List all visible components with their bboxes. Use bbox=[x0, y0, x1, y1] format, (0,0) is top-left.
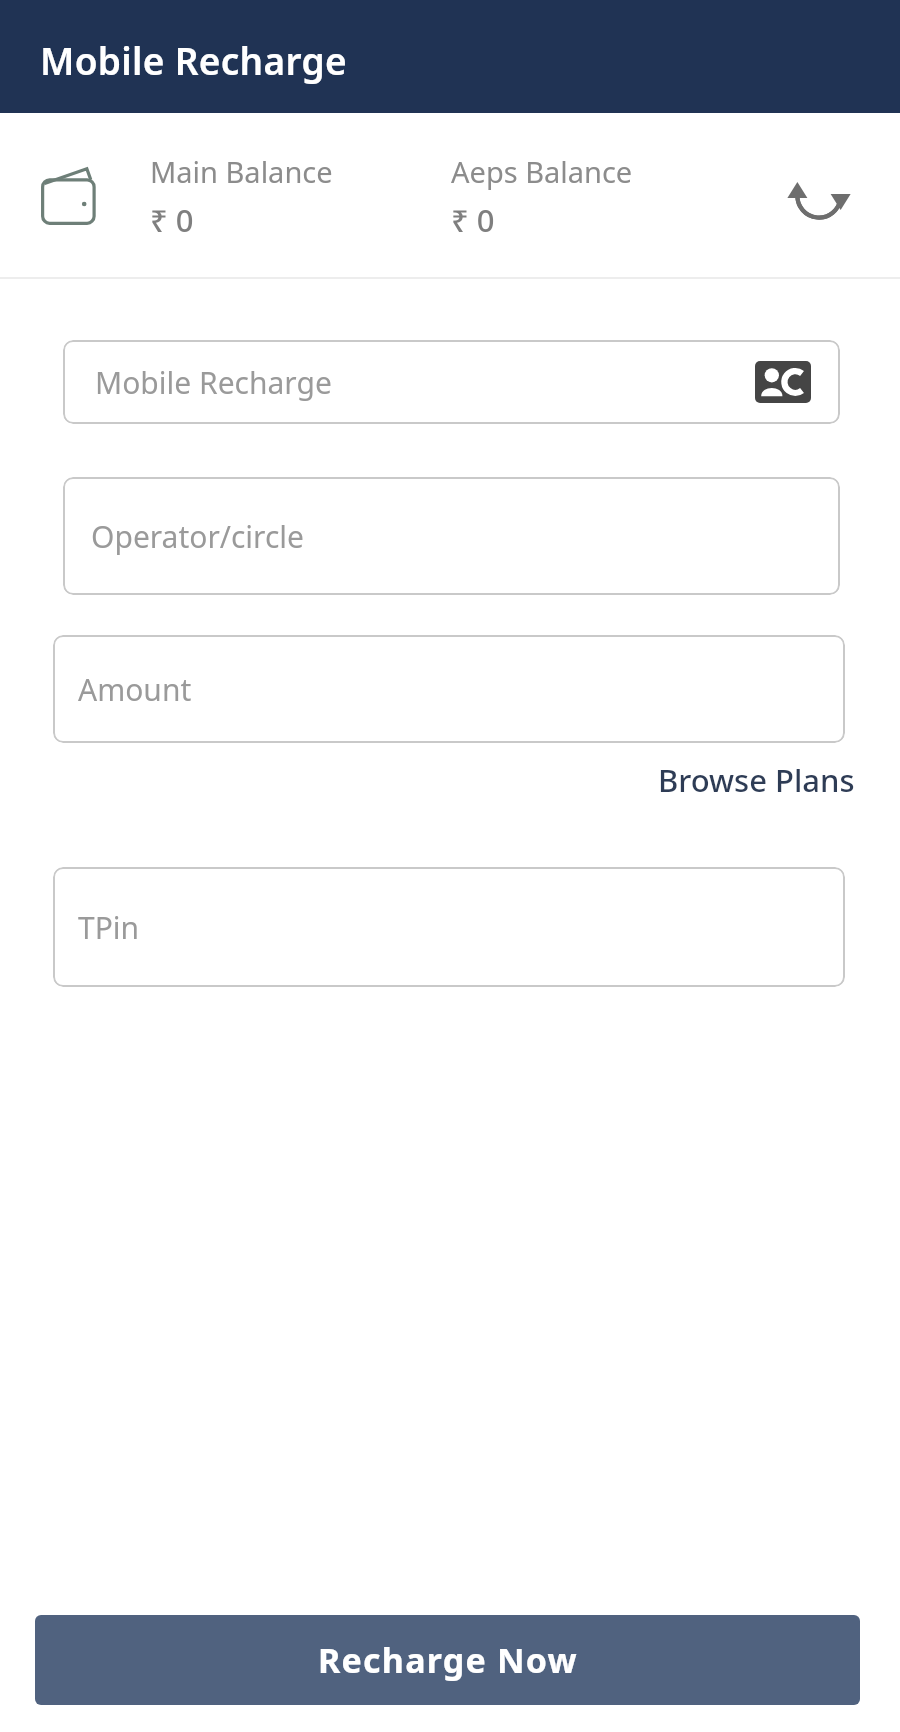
staticText: Aeps Balance bbox=[451, 152, 633, 191]
button[interactable]: Operator/circle bbox=[63, 477, 840, 595]
button[interactable]: TPin bbox=[53, 867, 845, 987]
button[interactable]: Main Balance bbox=[150, 152, 333, 241]
staticText: Operator/circle bbox=[91, 516, 304, 557]
staticText: ₹ 0 bbox=[150, 199, 194, 241]
staticText: ₹ 0 bbox=[451, 199, 495, 241]
button[interactable]: Refresh balance bbox=[782, 159, 856, 233]
staticText: Main Balance bbox=[150, 152, 333, 191]
staticText: Amount bbox=[78, 669, 192, 710]
staticText: Mobile Recharge bbox=[95, 362, 332, 403]
staticText: Mobile Recharge bbox=[40, 35, 347, 85]
button[interactable]: Amount bbox=[53, 635, 845, 743]
button[interactable]: Aeps Balance bbox=[451, 152, 633, 241]
button[interactable]: Pick contact bbox=[754, 360, 812, 404]
button[interactable]: Mobile Recharge bbox=[63, 340, 840, 424]
button[interactable]: Browse Plans bbox=[658, 759, 855, 801]
staticText: Recharge Now bbox=[318, 1637, 578, 1683]
button[interactable]: Recharge Now bbox=[35, 1615, 860, 1705]
staticText: TPin bbox=[78, 907, 140, 948]
